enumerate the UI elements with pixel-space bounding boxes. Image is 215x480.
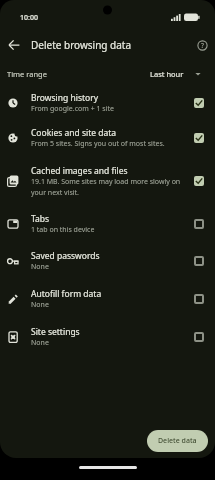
staticText: Autofill form data [31, 288, 102, 300]
staticText: Last hour [150, 69, 184, 79]
staticText: None [31, 262, 49, 272]
button[interactable]: Cookies and site data [0, 119, 215, 156]
button[interactable]: Tabs [0, 205, 215, 242]
button[interactable]: Time range [0, 62, 215, 86]
button[interactable] [6, 37, 22, 53]
staticText: From 5 sites. Signs you out of most site… [31, 139, 165, 149]
button[interactable]: Browsing history [0, 86, 215, 119]
staticText: Cached images and files [31, 165, 128, 177]
staticText: From google.com + 1 site [31, 104, 114, 114]
button[interactable]: Autofill form data [0, 280, 215, 318]
staticText: 10:00 [20, 13, 38, 23]
button[interactable]: Delete data [147, 430, 208, 452]
staticText: Delete browsing data [31, 38, 132, 52]
staticText: Time range [7, 69, 47, 79]
button[interactable]: Site settings [0, 318, 215, 356]
staticText: None [31, 300, 49, 310]
staticText: Cookies and site data [31, 127, 117, 139]
button[interactable]: ? [197, 40, 208, 51]
staticText: ? [201, 41, 204, 50]
staticText: Delete data [158, 436, 197, 446]
staticText: Browsing history [31, 92, 99, 104]
button[interactable]: Saved passwords [0, 242, 215, 280]
staticText: Site settings [31, 326, 80, 338]
button[interactable]: Cached images and files [0, 156, 215, 205]
staticText: None [31, 338, 49, 348]
staticText: 19.1 MB. Some sites may load more slowly… [31, 177, 181, 197]
staticText: 1 tab on this device [31, 225, 95, 235]
staticText: Saved passwords [31, 250, 100, 262]
staticText: Tabs [31, 213, 50, 225]
